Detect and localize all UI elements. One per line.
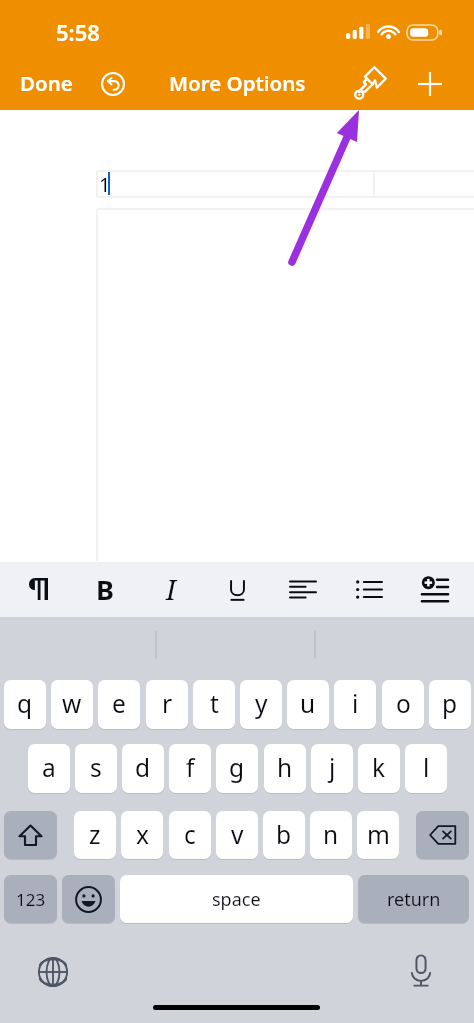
staticText: space — [212, 887, 261, 912]
staticText: e — [112, 687, 126, 720]
staticText: r — [162, 687, 173, 720]
staticText: B — [96, 571, 114, 608]
staticText: u — [300, 687, 316, 720]
staticText: v — [231, 818, 244, 851]
button[interactable]: Done — [12, 66, 81, 100]
staticText: y — [255, 687, 268, 720]
staticText: g — [229, 751, 245, 784]
button[interactable]: m — [357, 811, 399, 859]
staticText: b — [276, 818, 292, 851]
button[interactable]: Italic — [148, 566, 194, 612]
button[interactable]: j — [311, 744, 353, 793]
button[interactable]: p — [429, 680, 471, 729]
staticText: 123 — [16, 888, 46, 911]
staticText: c — [184, 818, 196, 851]
button[interactable]: Underline — [214, 566, 260, 612]
button[interactable]: Dictation — [404, 954, 438, 988]
button[interactable]: n — [310, 811, 352, 859]
button[interactable]: i — [334, 680, 376, 729]
staticText: n — [323, 818, 339, 851]
button[interactable]: Align left — [280, 566, 326, 612]
button[interactable]: h — [264, 744, 306, 793]
button[interactable]: Bold — [82, 566, 128, 612]
button[interactable]: Backspace — [416, 811, 469, 859]
staticText: x — [136, 818, 149, 851]
button[interactable]: space — [120, 875, 353, 923]
button[interactable]: r — [146, 680, 188, 729]
staticText: f — [186, 751, 195, 784]
button[interactable]: o — [382, 680, 424, 729]
button[interactable]: k — [358, 744, 400, 793]
staticText: s — [90, 751, 102, 784]
staticText: l — [423, 751, 430, 784]
button[interactable]: Bulleted list — [346, 566, 392, 612]
staticText: I — [166, 571, 176, 608]
staticText: return — [387, 887, 441, 912]
staticText: j — [329, 751, 336, 784]
button[interactable]: Undo — [95, 66, 131, 102]
button[interactable]: Change language — [36, 955, 70, 989]
button[interactable]: d — [122, 744, 164, 793]
button[interactable]: Shift — [4, 811, 57, 859]
button[interactable]: v — [216, 811, 258, 859]
button[interactable]: g — [216, 744, 258, 793]
button[interactable]: t — [193, 680, 235, 729]
staticText: w — [62, 687, 82, 720]
button[interactable]: Add — [412, 66, 448, 102]
button[interactable]: x — [121, 811, 163, 859]
staticText: k — [372, 751, 386, 784]
staticText: i — [352, 687, 359, 720]
button[interactable]: Numbers — [4, 875, 57, 923]
staticText: o — [396, 687, 411, 720]
button[interactable]: f — [169, 744, 211, 793]
staticText: q — [17, 687, 33, 720]
staticText: Done — [20, 69, 73, 97]
button[interactable]: w — [51, 680, 93, 729]
button[interactable]: Insert — [412, 566, 458, 612]
button[interactable]: y — [240, 680, 282, 729]
staticText: d — [135, 751, 151, 784]
button[interactable]: s — [75, 744, 117, 793]
button[interactable]: z — [74, 811, 116, 859]
button[interactable]: l — [405, 744, 447, 793]
staticText: t — [210, 687, 219, 720]
staticText: p — [442, 687, 458, 720]
button[interactable]: Emoji — [62, 875, 115, 923]
button[interactable]: a — [28, 744, 70, 793]
button[interactable]: e — [98, 680, 140, 729]
staticText: z — [89, 818, 101, 851]
staticText: a — [42, 751, 56, 784]
staticText: 1 — [99, 171, 111, 198]
button[interactable]: b — [263, 811, 305, 859]
button[interactable]: q — [4, 680, 46, 729]
button[interactable]: Format brush — [351, 66, 387, 102]
staticText: h — [277, 751, 293, 784]
staticText: m — [367, 818, 390, 851]
button[interactable]: return — [358, 875, 469, 923]
staticText: More Options — [169, 69, 306, 97]
button[interactable]: Paragraph — [15, 566, 61, 612]
button[interactable]: c — [169, 811, 211, 859]
button[interactable]: u — [287, 680, 329, 729]
staticText: 5:58 — [56, 17, 100, 47]
